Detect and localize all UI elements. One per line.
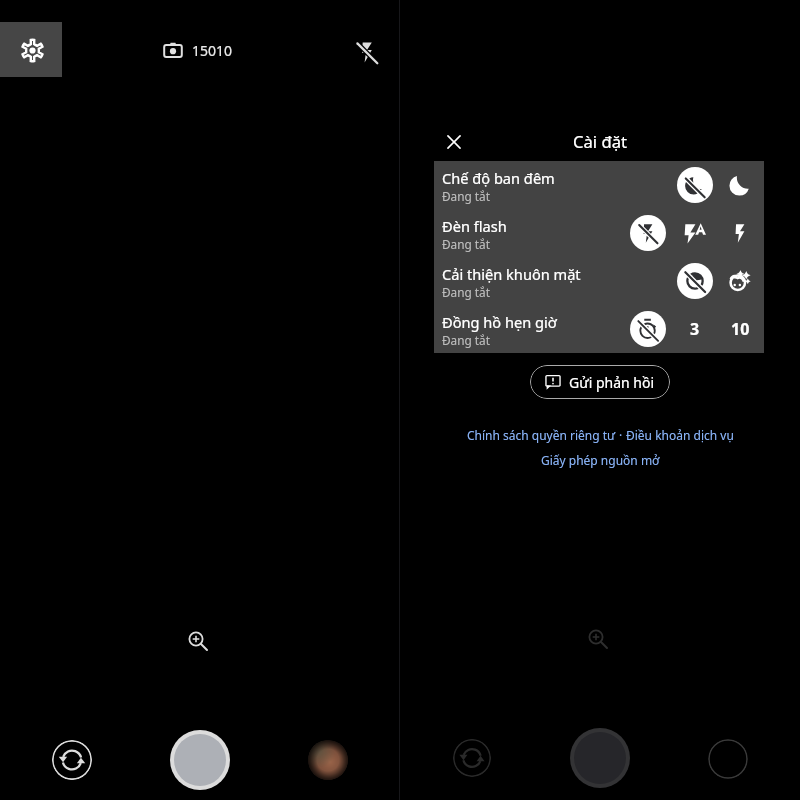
button[interactable]: Option	[630, 215, 666, 251]
staticText: 3	[690, 318, 700, 340]
staticText: Đèn flash	[442, 216, 507, 236]
button[interactable]: Gallery	[708, 739, 748, 779]
button[interactable]: Đồng hồ hẹn giờ	[434, 305, 764, 353]
button[interactable]: Option	[722, 167, 758, 203]
button[interactable]: Settings	[0, 22, 62, 77]
staticText: Đồng hồ hẹn giờ	[442, 312, 557, 332]
button[interactable]: Option	[677, 167, 713, 203]
button[interactable]: Giấy phép nguồn mở	[541, 452, 660, 468]
button[interactable]: Option	[722, 263, 758, 299]
staticText: Đang tắt	[442, 188, 490, 204]
button[interactable]: Gallery	[308, 740, 348, 780]
button[interactable]: Gửi phản hồi	[530, 365, 670, 399]
button[interactable]: Điều khoản dịch vụ	[626, 427, 734, 443]
button[interactable]: Option	[630, 311, 666, 347]
staticText: 15010	[192, 41, 233, 60]
button[interactable]: 10	[722, 311, 758, 347]
staticText: 10	[731, 318, 750, 340]
staticText: ·	[616, 427, 626, 443]
button[interactable]: Đèn flash	[434, 209, 764, 257]
staticText: Chế độ ban đêm	[442, 168, 555, 188]
button[interactable]: Chính sách quyền riêng tư	[467, 427, 616, 443]
button[interactable]: Shutter	[570, 728, 630, 788]
staticText: Đang tắt	[442, 332, 490, 348]
staticText: Đang tắt	[442, 236, 490, 252]
staticText: Đang tắt	[442, 284, 490, 300]
staticText: Cải thiện khuôn mặt	[442, 264, 581, 284]
button[interactable]: Chế độ ban đêm	[434, 161, 764, 209]
button[interactable]: Flash off	[352, 37, 382, 67]
button[interactable]: Close	[438, 126, 470, 158]
button[interactable]: Shutter	[170, 730, 230, 790]
button[interactable]: Switch camera	[453, 739, 491, 777]
staticText: Cài đặt	[573, 130, 627, 153]
button[interactable]: Cải thiện khuôn mặt	[434, 257, 764, 305]
button[interactable]: Option	[677, 263, 713, 299]
button[interactable]: Option	[722, 215, 758, 251]
button[interactable]: Switch camera	[52, 740, 92, 780]
staticText: Gửi phản hồi	[569, 373, 655, 392]
button[interactable]: Option	[677, 215, 713, 251]
button[interactable]: 3	[677, 311, 713, 347]
